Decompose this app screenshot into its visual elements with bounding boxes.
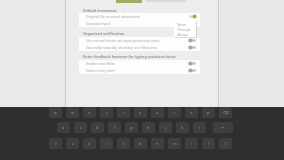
button[interactable]: Switch off — [188, 45, 197, 50]
button[interactable]: e — [83, 107, 96, 118]
staticText: n — [156, 141, 159, 146]
staticText: Default treatment — [83, 8, 117, 13]
button[interactable]: r — [100, 107, 113, 118]
staticText: Collect entry alert — [86, 68, 116, 73]
staticText: j — [165, 125, 167, 130]
button[interactable]: p — [202, 107, 215, 118]
button[interactable]: Switch off — [188, 68, 197, 73]
button[interactable]: Switch on — [188, 14, 197, 19]
button[interactable]: ⇧ — [219, 138, 232, 149]
button[interactable]: Switch off — [188, 61, 197, 66]
button[interactable]: f — [108, 122, 121, 133]
staticText: p — [207, 110, 210, 115]
staticText: ⌫ — [223, 110, 229, 115]
button[interactable]: Switch off — [188, 21, 197, 26]
button[interactable]: Through — [177, 27, 196, 32]
staticText: Enable voice filter — [86, 61, 116, 66]
staticText: x — [88, 141, 91, 146]
button[interactable]: v — [117, 138, 130, 149]
staticText: ⇧ — [54, 141, 58, 146]
staticText: i — [174, 110, 176, 115]
button[interactable]: Never — [177, 22, 196, 27]
staticText: Original file as saved attachment — [86, 14, 140, 19]
button[interactable]: s — [74, 122, 87, 133]
button[interactable]: m — [168, 138, 181, 149]
staticText: k — [181, 125, 184, 130]
staticText: a — [62, 125, 65, 130]
staticText: q — [54, 110, 57, 115]
button[interactable]: o — [185, 107, 198, 118]
staticText: Separate input — [86, 21, 111, 26]
button[interactable]: Enable voice filter — [79, 60, 200, 67]
button[interactable]: q — [49, 107, 62, 118]
staticText: r — [106, 110, 108, 115]
button[interactable]: u — [151, 107, 164, 118]
button[interactable]: k — [176, 122, 189, 133]
staticText: w — [71, 110, 75, 115]
button[interactable]: Use natural device set input performed u… — [79, 37, 200, 44]
staticText: e — [88, 110, 91, 115]
staticText: Use natural device set input performed u… — [86, 38, 160, 43]
staticText: o — [190, 110, 193, 115]
button[interactable]: c — [100, 138, 113, 149]
button[interactable]: a — [57, 122, 70, 133]
staticText: f — [114, 125, 116, 130]
button[interactable]: Separate input — [79, 20, 200, 27]
button[interactable]: g — [125, 122, 138, 133]
button[interactable]: x — [83, 138, 96, 149]
staticText: b — [139, 141, 142, 146]
button[interactable]: w — [66, 107, 79, 118]
staticText: t — [123, 110, 125, 115]
button[interactable]: t — [117, 107, 130, 118]
staticText: ↵ — [221, 125, 225, 130]
staticText: ! — [191, 141, 193, 146]
button[interactable]: d — [91, 122, 104, 133]
staticText: Organised notification — [83, 31, 125, 36]
button[interactable]: ! — [185, 138, 198, 149]
button[interactable]: Original file as saved attachment — [79, 13, 200, 20]
button[interactable]: Switch off — [188, 38, 197, 43]
button[interactable]: Collect entry alert — [79, 67, 200, 74]
staticText: Always — [177, 32, 188, 37]
button[interactable]: b — [134, 138, 147, 149]
staticText: c — [106, 141, 108, 146]
button[interactable]: ⌫ — [219, 107, 232, 118]
button[interactable]: ? — [202, 138, 215, 149]
button[interactable]: l — [193, 122, 206, 133]
staticText: Through — [177, 27, 191, 32]
staticText: g — [130, 125, 133, 130]
staticText: l — [199, 125, 201, 130]
staticText: h — [147, 125, 150, 130]
button[interactable]: Enter — [213, 122, 233, 133]
button[interactable]: Always — [177, 32, 196, 37]
staticText: Generally naturally set today use filled… — [86, 45, 157, 50]
staticText: Never — [177, 22, 187, 27]
staticText: y — [139, 110, 142, 115]
button[interactable]: z — [66, 138, 79, 149]
staticText: ? — [208, 141, 210, 146]
staticText: Enter feedback however for typing assist… — [83, 54, 176, 59]
button[interactable]: Generally naturally set today use filled… — [79, 44, 200, 51]
staticText: s — [80, 125, 82, 130]
button[interactable]: h — [142, 122, 155, 133]
staticText: z — [72, 141, 74, 146]
staticText: ⇧ — [224, 141, 228, 146]
button[interactable]: i — [168, 107, 181, 118]
staticText: d — [96, 125, 99, 130]
staticText: u — [156, 110, 159, 115]
button[interactable]: ⇧ — [49, 138, 62, 149]
staticText: v — [122, 141, 125, 146]
button[interactable]: y — [134, 107, 147, 118]
button[interactable]: j — [159, 122, 172, 133]
button[interactable]: n — [151, 138, 164, 149]
staticText: m — [173, 141, 177, 146]
